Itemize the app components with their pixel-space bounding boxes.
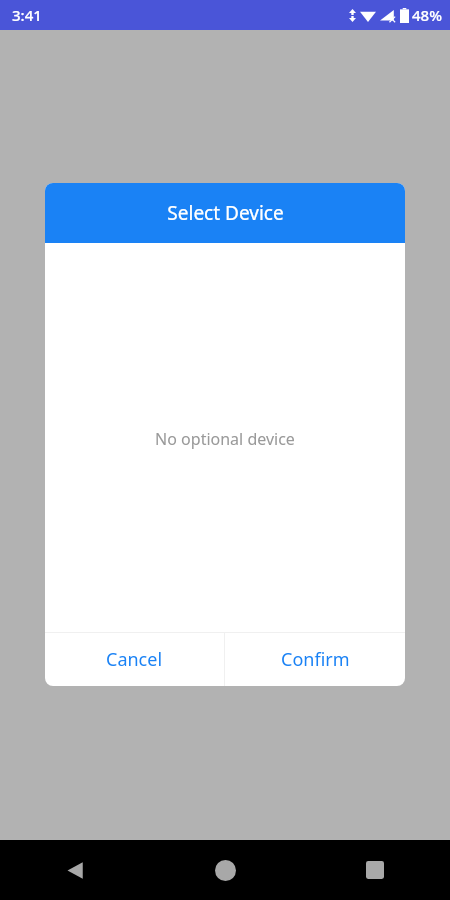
staticText: 3:41 — [12, 5, 42, 25]
staticText: No optional device — [155, 428, 295, 450]
button[interactable]: Recent apps — [300, 840, 450, 900]
button[interactable]: Home — [150, 840, 300, 900]
staticText: Cancel — [106, 647, 163, 672]
button[interactable]: Back — [0, 840, 150, 900]
button[interactable]: Cancel — [45, 633, 224, 686]
button[interactable]: Confirm — [225, 633, 405, 686]
staticText: 48% — [412, 5, 442, 25]
staticText: Confirm — [281, 647, 350, 672]
staticText: Select Device — [167, 200, 284, 226]
